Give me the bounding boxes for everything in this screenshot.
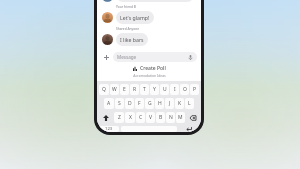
button[interactable]: J — [165, 98, 174, 109]
button[interactable]: Add attachment — [101, 52, 111, 62]
button[interactable]: O — [180, 84, 189, 95]
button[interactable]: 123 — [99, 126, 119, 132]
button[interactable]: F — [135, 98, 144, 109]
staticText: I — [174, 86, 176, 93]
staticText: E — [123, 86, 126, 93]
staticText: O — [183, 86, 187, 93]
staticText: K — [178, 100, 182, 107]
button[interactable]: E — [120, 84, 129, 95]
staticText: U — [163, 86, 167, 93]
button[interactable]: W — [110, 84, 119, 95]
staticText: C — [139, 114, 143, 121]
other: Avatar — [102, 12, 113, 23]
staticText: P — [193, 86, 197, 93]
staticText: H — [158, 100, 162, 107]
staticText: Message — [117, 54, 137, 60]
button[interactable]: Message — [113, 52, 197, 62]
button[interactable]: X — [125, 112, 135, 123]
button[interactable]: T — [140, 84, 149, 95]
other: Voice input — [188, 55, 193, 60]
button[interactable]: Backspace — [186, 112, 199, 123]
button[interactable]: U — [160, 84, 169, 95]
staticText: M — [178, 114, 183, 121]
staticText: Let's glamp! — [120, 14, 150, 21]
button[interactable]: Let's glamp! — [116, 11, 154, 24]
staticText: B — [159, 114, 163, 121]
staticText: Y — [153, 86, 156, 93]
button[interactable]: Q — [99, 84, 109, 95]
staticText: Create Poll — [140, 65, 166, 72]
staticText: D — [128, 100, 132, 107]
button[interactable]: Return — [179, 126, 199, 132]
button[interactable]: M — [176, 112, 185, 123]
button[interactable]: Y — [150, 84, 159, 95]
staticText: G — [148, 100, 152, 107]
staticText: Z — [118, 114, 121, 121]
staticText: T — [143, 86, 146, 93]
staticText: I like bars — [120, 36, 144, 43]
staticText: W — [112, 86, 117, 93]
button[interactable]: H — [155, 98, 164, 109]
staticText: F — [138, 100, 141, 107]
button[interactable]: Create Poll — [97, 63, 201, 81]
button[interactable]: C — [136, 112, 145, 123]
button[interactable]: S — [115, 98, 124, 109]
button[interactable]: L — [185, 98, 194, 109]
button[interactable]: K — [175, 98, 184, 109]
button[interactable]: G — [145, 98, 154, 109]
staticText: R — [133, 86, 137, 93]
button[interactable]: N — [166, 112, 175, 123]
staticText: S — [118, 100, 121, 107]
button[interactable]: I like bars — [116, 33, 148, 46]
staticText: V — [149, 114, 153, 121]
button[interactable]: R — [130, 84, 139, 95]
staticText: L — [188, 100, 191, 107]
button[interactable]: Z — [114, 112, 124, 123]
other: Avatar — [102, 34, 113, 45]
button[interactable]: A — [104, 98, 114, 109]
button[interactable]: I — [170, 84, 179, 95]
button[interactable]: P — [190, 84, 199, 95]
staticText: 123 — [105, 126, 113, 132]
staticText: X — [129, 114, 132, 121]
other: Avatar — [102, 0, 113, 2]
staticText: Shared Anyone — [116, 27, 140, 31]
staticText: Your friend B — [116, 5, 136, 9]
staticText: N — [169, 114, 173, 121]
button[interactable]: D — [125, 98, 134, 109]
button[interactable]: Terrible options. Can we sleep in — [116, 0, 194, 2]
button[interactable]: V — [146, 112, 155, 123]
staticText: Q — [102, 86, 106, 93]
staticText: J — [169, 100, 171, 107]
staticText: A — [107, 100, 111, 107]
staticText: Accomodation Ideas — [133, 73, 166, 78]
button[interactable]: Shift — [99, 112, 113, 123]
button[interactable]: B — [156, 112, 165, 123]
